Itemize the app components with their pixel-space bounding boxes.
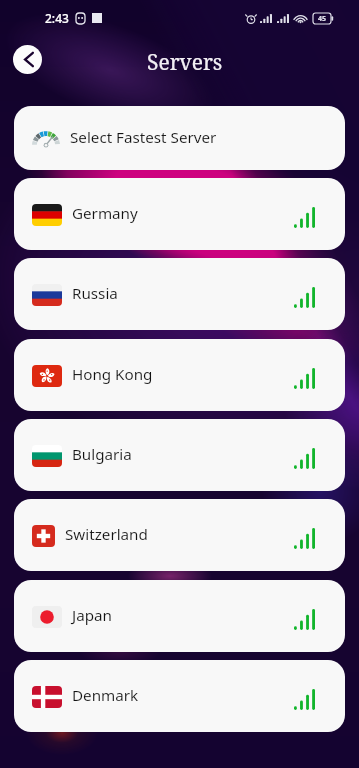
staticText: Servers xyxy=(147,48,223,77)
staticText: 45 xyxy=(318,14,327,24)
staticText: 2:43 xyxy=(45,10,69,26)
staticText: Hong Kong xyxy=(72,364,153,385)
staticText: Russia xyxy=(72,283,118,304)
staticText: Switzerland xyxy=(65,524,148,545)
button[interactable]: Russia xyxy=(14,258,345,330)
button[interactable]: Germany xyxy=(14,178,345,250)
staticText: Japan xyxy=(72,605,112,626)
button[interactable]: Japan xyxy=(14,580,345,652)
staticText: Bulgaria xyxy=(72,444,132,465)
staticText: Germany xyxy=(72,203,138,224)
staticText: Denmark xyxy=(72,685,139,706)
button[interactable]: Switzerland xyxy=(14,499,345,571)
button[interactable]: Denmark xyxy=(14,660,345,732)
button[interactable]: Back xyxy=(13,45,42,74)
staticText: Select Fastest Server xyxy=(70,127,217,148)
button[interactable]: Hong Kong xyxy=(14,339,345,411)
button[interactable]: Bulgaria xyxy=(14,419,345,491)
button[interactable]: Select Fastest Server xyxy=(14,106,345,170)
